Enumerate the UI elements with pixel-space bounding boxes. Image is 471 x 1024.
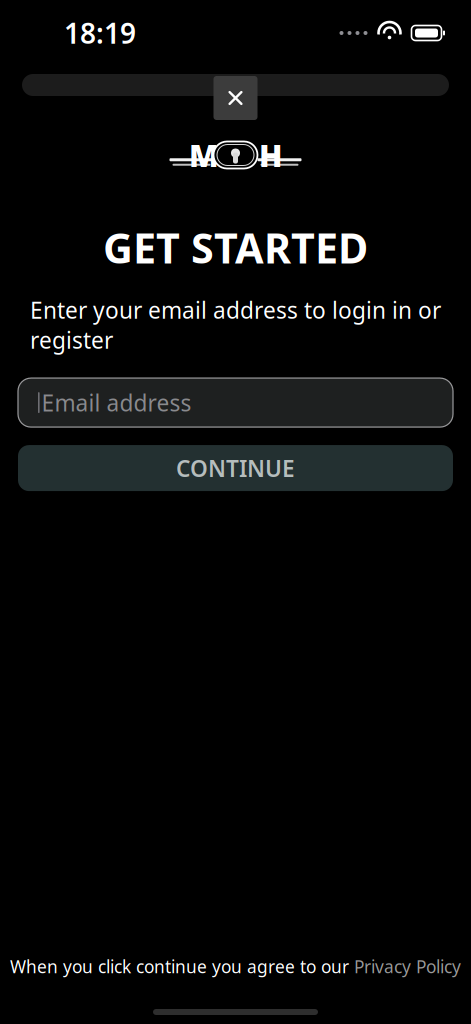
button[interactable]: Privacy Policy [354,955,461,978]
staticText: H [259,135,282,175]
button[interactable]: Email address [18,378,453,427]
staticText: GET STARTED [103,220,368,275]
button[interactable]: CONTINUE [18,445,453,491]
staticText: Privacy Policy [354,955,461,978]
staticText: Enter your email address to login in or … [30,295,441,355]
staticText: Email address [42,387,192,418]
staticText: 18:19 [64,14,136,52]
staticText: When you click continue you agree to our [10,955,354,978]
staticText: CONTINUE [176,453,295,483]
button[interactable]: Close [213,76,257,120]
staticText: M [189,135,219,175]
